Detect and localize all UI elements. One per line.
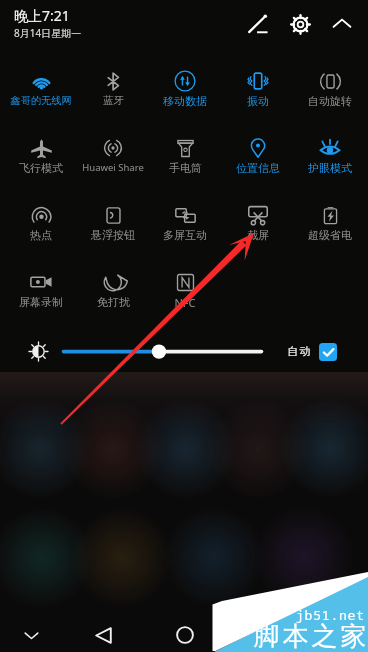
staticText: 悬浮按钮: [91, 228, 135, 242]
staticText: 鑫哥的无线网: [10, 94, 72, 107]
button[interactable]: [77, 195, 149, 241]
button[interactable]: Auto brightness: [319, 343, 337, 361]
staticText: 自动: [287, 344, 311, 358]
staticText: 超级省电: [308, 228, 352, 242]
staticText: NFC: [174, 295, 196, 310]
staticText: 晚上7:21: [14, 6, 70, 25]
button[interactable]: [294, 128, 366, 174]
staticText: 免打扰: [97, 295, 130, 309]
button[interactable]: [77, 262, 149, 308]
staticText: 脚本之家: [252, 620, 368, 652]
staticText: 截屏: [247, 228, 269, 242]
staticText: 飞行模式: [19, 161, 63, 175]
staticText: 移动数据: [163, 94, 207, 108]
button[interactable]: [77, 128, 149, 174]
button[interactable]: Edit: [240, 7, 274, 41]
staticText: 护眼模式: [308, 161, 352, 175]
staticText: 自动旋转: [308, 94, 352, 108]
button[interactable]: [294, 61, 366, 107]
staticText: 屏幕录制: [19, 295, 63, 309]
button[interactable]: Back: [86, 618, 120, 652]
button[interactable]: Settings: [283, 7, 317, 41]
button[interactable]: [294, 195, 366, 241]
button[interactable]: [222, 128, 294, 174]
button[interactable]: [5, 61, 77, 107]
staticText: jb51.net: [296, 606, 365, 624]
button[interactable]: [149, 262, 221, 308]
button[interactable]: Home: [168, 618, 202, 652]
staticText: 多屏互动: [163, 228, 207, 242]
button[interactable]: [149, 195, 221, 241]
button[interactable]: [77, 61, 149, 107]
button[interactable]: Hide: [14, 618, 48, 652]
button[interactable]: [222, 61, 294, 107]
button[interactable]: Brightness slider: [62, 342, 264, 362]
button[interactable]: [149, 128, 221, 174]
staticText: 振动: [247, 94, 269, 108]
staticText: 8月14日星期一: [14, 26, 82, 40]
button[interactable]: [222, 195, 294, 241]
staticText: 热点: [30, 228, 52, 242]
button[interactable]: [5, 128, 77, 174]
button[interactable]: [5, 262, 77, 308]
staticText: Huawei Share: [82, 161, 144, 174]
button[interactable]: [149, 61, 221, 107]
button[interactable]: Brightness: [27, 340, 49, 362]
button[interactable]: Collapse: [325, 7, 359, 41]
button[interactable]: [5, 195, 77, 241]
staticText: 蓝牙: [103, 94, 124, 107]
staticText: 手电筒: [169, 161, 202, 175]
staticText: 位置信息: [236, 161, 280, 175]
